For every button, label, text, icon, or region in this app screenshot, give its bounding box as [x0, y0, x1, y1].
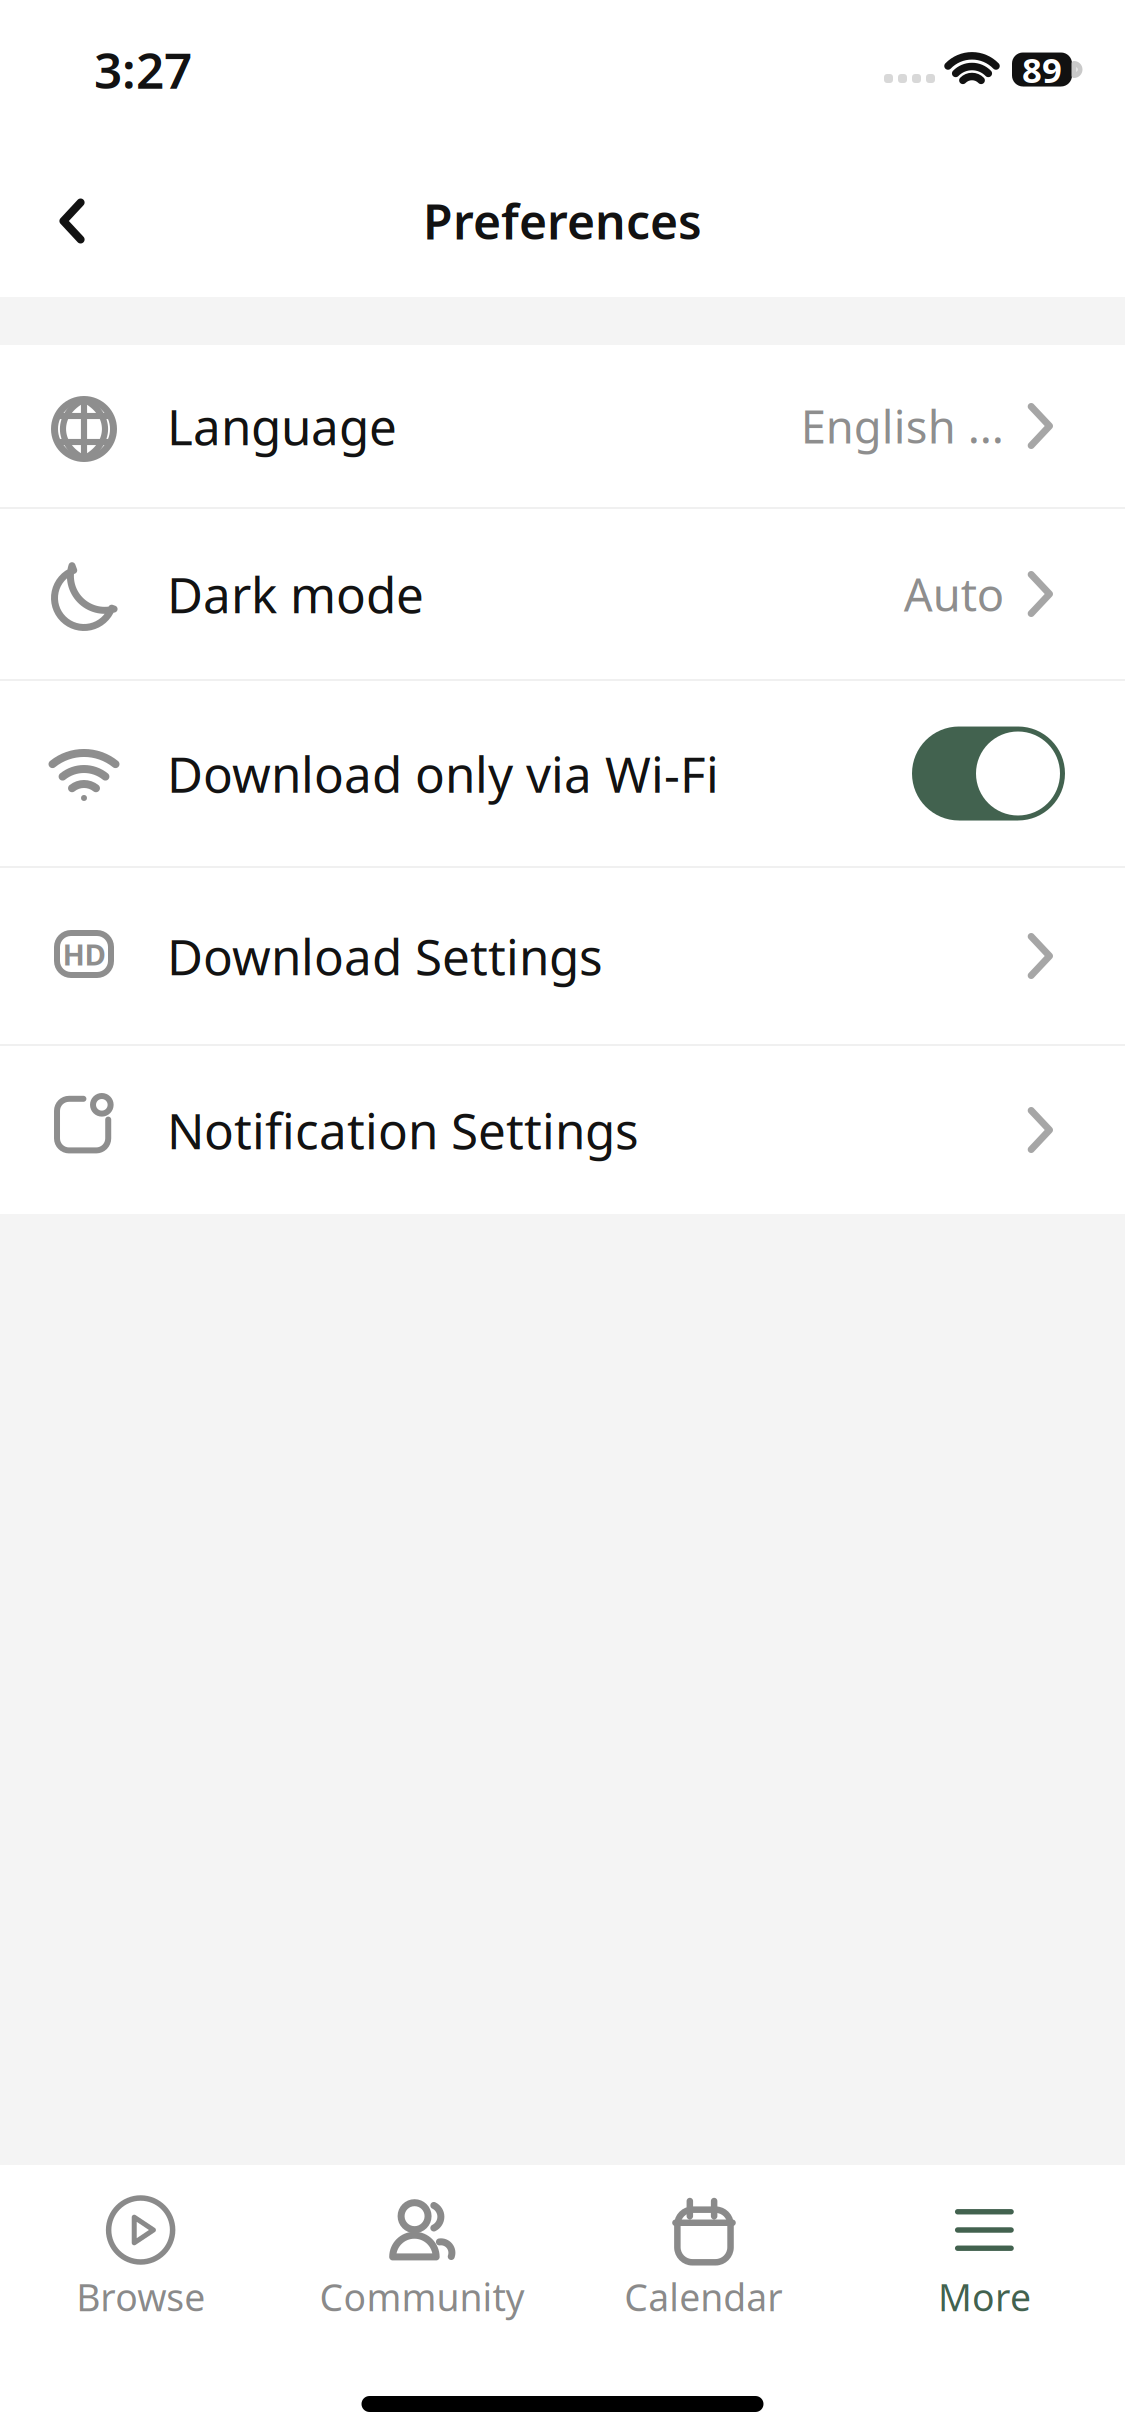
- staticText: English ...: [801, 396, 1004, 456]
- staticText: Calendar: [624, 2272, 782, 2322]
- button[interactable]: Browse: [0, 2197, 281, 2322]
- staticText: 89: [1022, 46, 1062, 92]
- staticText: Auto: [904, 564, 1004, 624]
- staticText: HD: [62, 934, 105, 973]
- button[interactable]: More: [844, 2197, 1125, 2322]
- staticText: Notification Settings: [167, 1097, 639, 1163]
- button[interactable]: Notification Settings: [0, 1046, 1125, 1214]
- button[interactable]: Back: [27, 176, 117, 266]
- staticText: Dark mode: [167, 561, 424, 627]
- staticText: Language: [167, 393, 397, 459]
- button[interactable]: Calendar: [562, 2197, 844, 2322]
- staticText: More: [938, 2272, 1031, 2322]
- button[interactable]: Download only via Wi-Fi: [0, 681, 1125, 866]
- button[interactable]: HD: [0, 868, 1125, 1044]
- staticText: 3:27: [94, 37, 192, 102]
- button[interactable]: Dark mode: [0, 509, 1125, 679]
- staticText: Community: [319, 2272, 524, 2322]
- staticText: Download only via Wi-Fi: [167, 741, 719, 806]
- button[interactable]: Language: [0, 345, 1125, 507]
- staticText: Download Settings: [167, 923, 603, 989]
- button[interactable]: Community: [281, 2197, 562, 2322]
- staticText: Preferences: [423, 189, 702, 253]
- staticText: Browse: [76, 2272, 205, 2322]
